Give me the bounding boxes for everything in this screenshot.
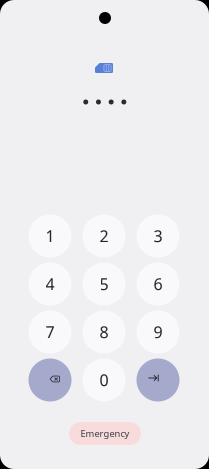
button[interactable]: 1	[28, 214, 71, 257]
staticText: 8	[99, 321, 108, 343]
staticText: 4	[45, 273, 54, 295]
button[interactable]: 0	[82, 358, 125, 401]
button[interactable]: 6	[136, 262, 179, 305]
staticText: 0	[99, 369, 108, 391]
staticText: 5	[99, 273, 108, 295]
button[interactable]: 9	[136, 310, 179, 353]
button[interactable]: Delete	[28, 358, 71, 401]
staticText: 1	[45, 225, 54, 247]
button[interactable]: 5	[82, 262, 125, 305]
button[interactable]: Submit	[136, 358, 179, 401]
button[interactable]: 2	[82, 214, 125, 257]
staticText: 3	[153, 225, 162, 247]
button[interactable]: 4	[28, 262, 71, 305]
button[interactable]: 7	[28, 310, 71, 353]
button[interactable]: 8	[82, 310, 125, 353]
staticText: 2	[99, 225, 108, 247]
staticText: 6	[153, 273, 162, 295]
staticText: 7	[45, 321, 54, 343]
button[interactable]: Emergency	[69, 422, 141, 445]
staticText: Emergency	[80, 427, 129, 440]
button[interactable]: 3	[136, 214, 179, 257]
staticText: 9	[153, 321, 162, 343]
